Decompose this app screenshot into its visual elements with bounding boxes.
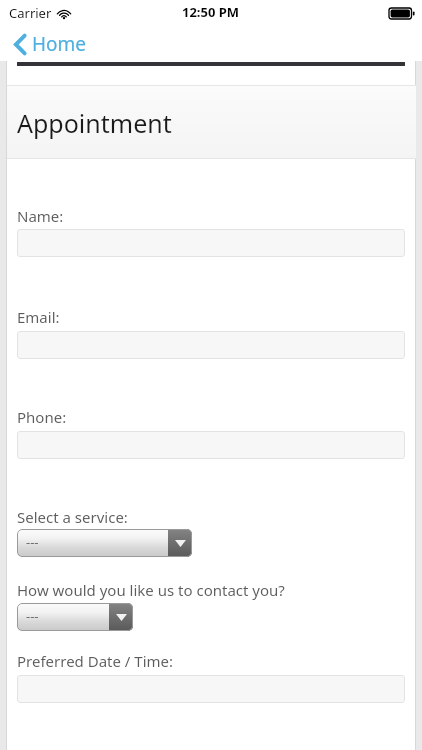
- staticText: Phone:: [17, 407, 67, 427]
- staticText: Email:: [17, 307, 60, 327]
- staticText: Appointment: [17, 106, 172, 140]
- button[interactable]: [17, 331, 405, 359]
- staticText: ---: [26, 607, 39, 625]
- button[interactable]: [17, 229, 405, 257]
- button[interactable]: Select option: [17, 529, 192, 557]
- staticText: 12:50 PM: [182, 3, 240, 21]
- button[interactable]: Home: [10, 28, 91, 60]
- button[interactable]: [17, 431, 405, 459]
- staticText: How would you like us to contact you?: [17, 580, 285, 600]
- button[interactable]: Select option: [17, 603, 133, 631]
- staticText: Select a service:: [17, 507, 128, 527]
- staticText: Preferred Date / Time:: [17, 651, 174, 671]
- staticText: Home: [32, 31, 87, 57]
- staticText: ---: [26, 533, 39, 551]
- staticText: Carrier: [9, 4, 52, 22]
- staticText: Name:: [17, 206, 64, 226]
- button[interactable]: [17, 675, 405, 703]
